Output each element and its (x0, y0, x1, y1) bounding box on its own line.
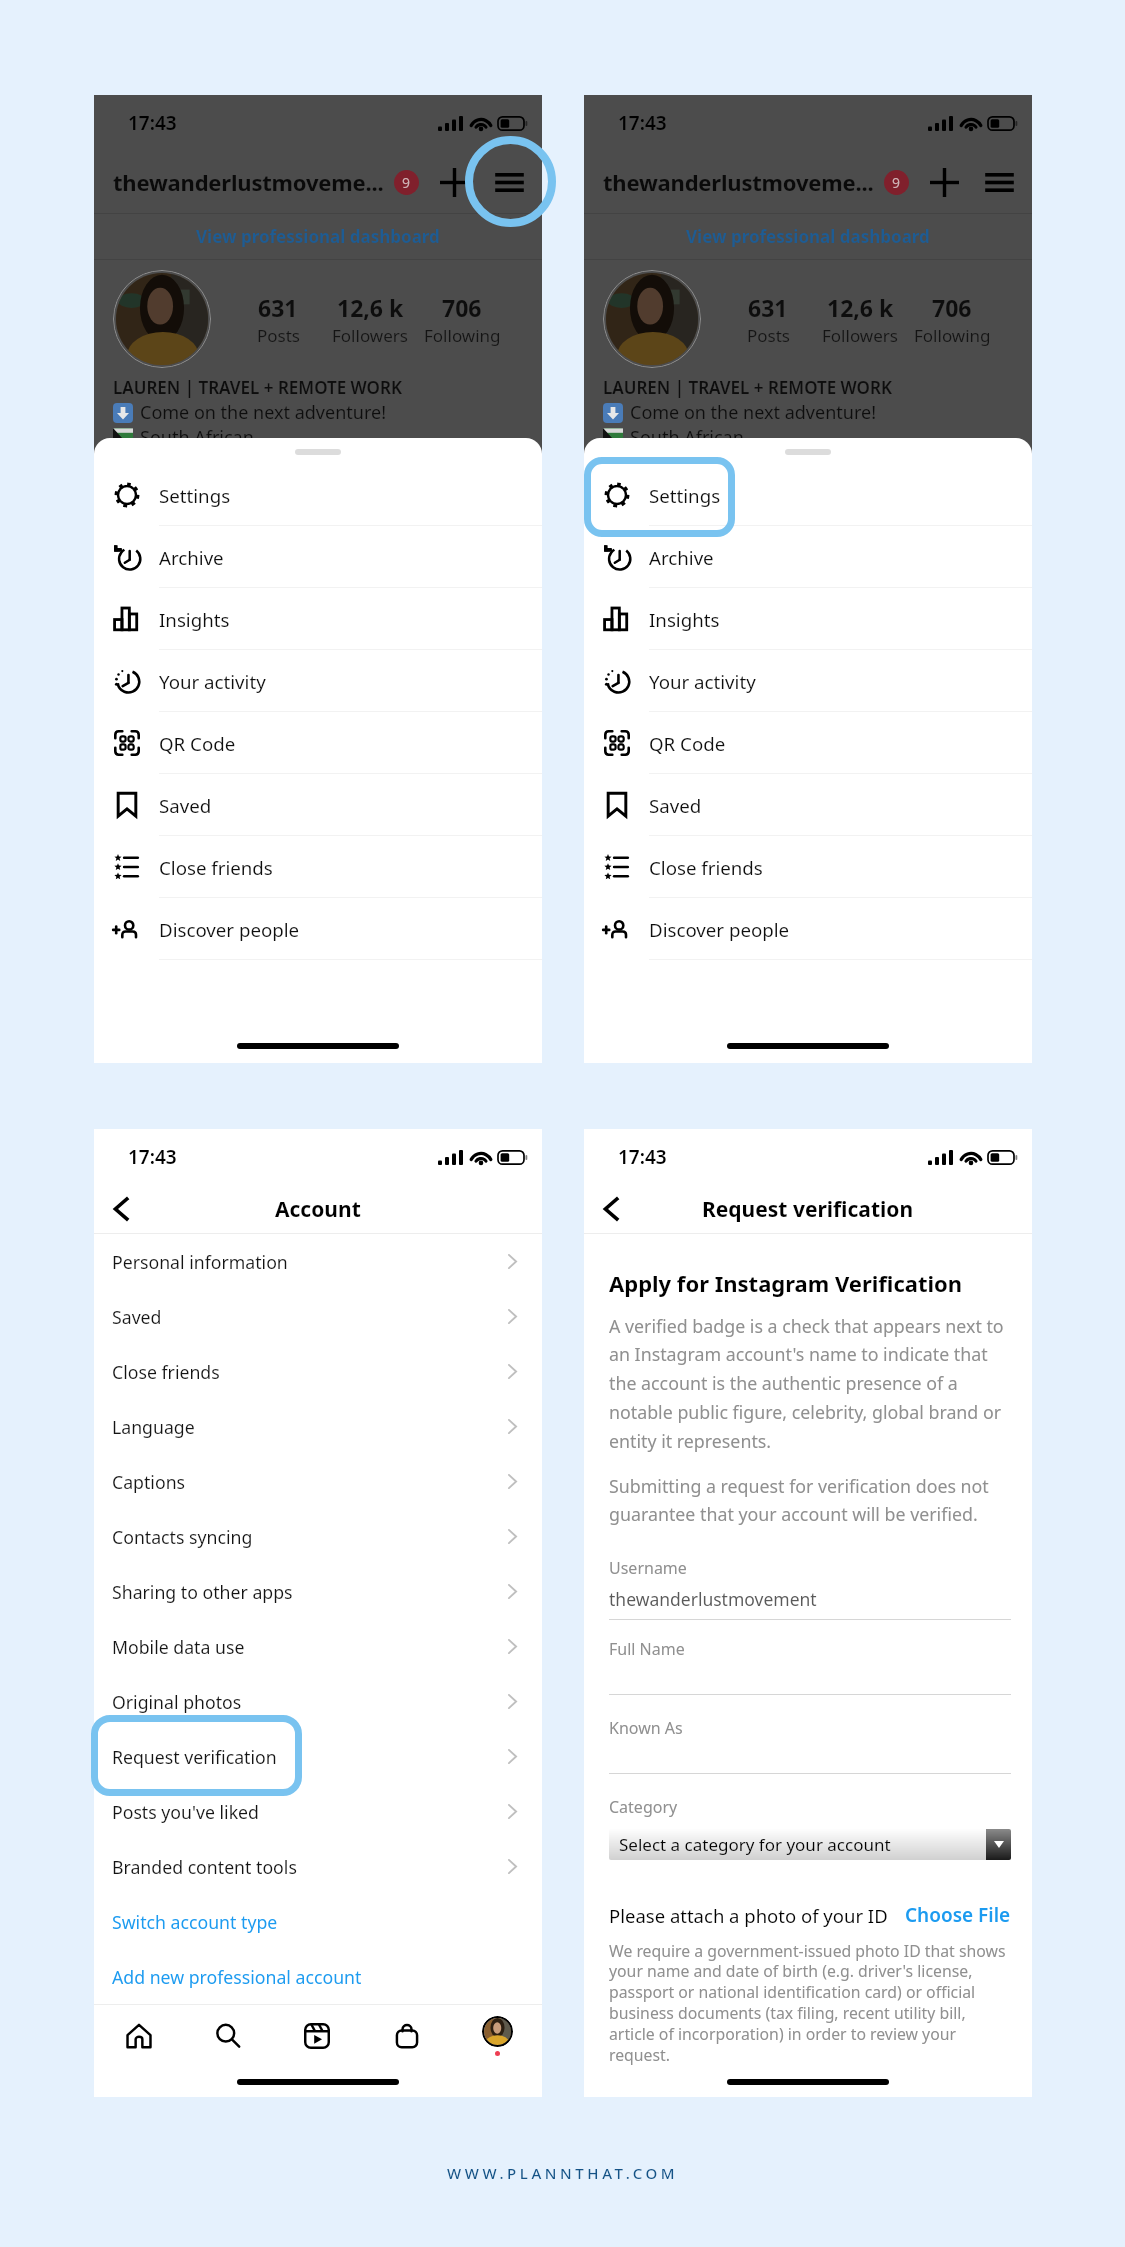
staticText: Settings (159, 483, 231, 508)
staticText: LAUREN | TRAVEL + REMOTE WORK (603, 376, 892, 399)
button[interactable]: View professional dashboard (94, 214, 542, 259)
button[interactable]: Language (112, 1399, 517, 1454)
button[interactable]: Shop (362, 2005, 452, 2067)
staticText: Posts (747, 324, 790, 347)
staticText: 9 (402, 173, 411, 192)
staticText: QR Code (649, 731, 726, 756)
button[interactable]: Your activity (584, 650, 1032, 712)
button[interactable]: Request verification (112, 1729, 517, 1784)
button[interactable]: Create (432, 158, 476, 206)
staticText: Select a category for your account (619, 1833, 891, 1856)
staticText: LAUREN | TRAVEL + REMOTE WORK (113, 376, 402, 399)
staticText: Known As (609, 1717, 683, 1739)
staticText: Original photos (112, 1690, 242, 1714)
staticText: South African (140, 425, 254, 450)
staticText: Following (424, 324, 501, 347)
staticText: Sharing to other apps (112, 1580, 293, 1604)
staticText: Your activity (649, 669, 756, 694)
button[interactable]: Saved (584, 774, 1032, 836)
staticText: 9 (892, 173, 901, 192)
staticText: Close friends (649, 855, 763, 880)
staticText: Request verification (702, 1195, 914, 1224)
button[interactable]: Search (183, 2005, 272, 2067)
button[interactable]: Your activity (94, 650, 542, 712)
button[interactable]: Select a category for your account (609, 1829, 1011, 1860)
staticText: 12,6 k (827, 292, 894, 323)
button[interactable]: Close friends (94, 836, 542, 898)
staticText: 706 (442, 292, 482, 323)
staticText: 631 (258, 292, 298, 323)
button[interactable]: Original photos (112, 1674, 517, 1729)
staticText: We require a government-issued photo ID … (609, 1940, 1011, 2066)
staticText: Posts (257, 324, 300, 347)
staticText: Submitting a request for verification do… (609, 1474, 1011, 1527)
button[interactable]: Branded content tools (112, 1839, 517, 1894)
button[interactable]: Profile photo (113, 270, 211, 368)
staticText: WWW.PLANNTHAT.COM (447, 2163, 679, 2183)
staticText: Request verification (112, 1745, 277, 1769)
button[interactable]: Close friends (584, 836, 1032, 898)
staticText: Saved (112, 1305, 162, 1329)
button[interactable]: Posts you've liked (112, 1784, 517, 1839)
button[interactable]: View professional dashboard (584, 214, 1032, 259)
staticText: 17:43 (618, 110, 667, 136)
staticText: Add new professional account (112, 1965, 362, 1989)
button[interactable]: Reels (272, 2005, 362, 2067)
staticText: Saved (159, 793, 212, 818)
button[interactable]: Saved (112, 1289, 517, 1344)
staticText: View professional dashboard (196, 225, 440, 248)
button[interactable]: Menu (487, 158, 531, 206)
button[interactable]: Captions (112, 1454, 517, 1509)
button[interactable]: Discover people (94, 898, 542, 960)
button[interactable]: Back (584, 1185, 640, 1233)
button[interactable]: Saved (94, 774, 542, 836)
staticText: Captions (112, 1470, 186, 1494)
button[interactable]: Settings (94, 464, 542, 526)
button[interactable]: Personal information (112, 1234, 517, 1289)
staticText: Come on the next adventure! (630, 400, 876, 425)
button[interactable]: Archive (584, 526, 1032, 588)
staticText: Mobile data use (112, 1635, 245, 1659)
staticText: Username (609, 1557, 687, 1579)
button[interactable]: Settings (584, 464, 1032, 526)
button[interactable]: Add new professional account (112, 1949, 542, 2004)
button[interactable]: Close friends (112, 1344, 517, 1399)
staticText: Apply for Instagram Verification (609, 1268, 963, 1298)
button[interactable]: Profile (452, 2005, 542, 2067)
staticText: Contacts syncing (112, 1525, 253, 1549)
button[interactable]: Insights (94, 588, 542, 650)
button[interactable]: Profile photo (603, 270, 701, 368)
staticText: thewanderlustmovement (609, 1587, 817, 1611)
button[interactable]: QR Code (94, 712, 542, 774)
staticText: Branded content tools (112, 1855, 297, 1879)
staticText: View professional dashboard (686, 225, 930, 248)
staticText: Followers (822, 324, 898, 347)
staticText: Choose File (905, 1902, 1011, 1928)
button[interactable]: Menu (977, 158, 1021, 206)
button[interactable]: Mobile data use (112, 1619, 517, 1674)
button[interactable]: Switch account type (112, 1894, 542, 1949)
staticText: 17:43 (618, 1144, 667, 1170)
button[interactable]: Home (94, 2005, 183, 2067)
staticText: Posts you've liked (112, 1800, 259, 1824)
staticText: Your activity (159, 669, 266, 694)
staticText: Come on the next adventure! (140, 400, 386, 425)
staticText: Full Name (609, 1638, 685, 1660)
button[interactable]: Contacts syncing (112, 1509, 517, 1564)
button[interactable]: Back (94, 1185, 150, 1233)
staticText: 631 (748, 292, 788, 323)
button[interactable]: Insights (584, 588, 1032, 650)
button[interactable]: Archive (94, 526, 542, 588)
button[interactable]: QR Code (584, 712, 1032, 774)
staticText: Switch account type (112, 1910, 278, 1934)
button[interactable]: Choose File (905, 1902, 1011, 1928)
button[interactable]: Sharing to other apps (112, 1564, 517, 1619)
staticText: Saved (649, 793, 702, 818)
button[interactable]: Discover people (584, 898, 1032, 960)
staticText: Discover people (159, 917, 300, 942)
staticText: Following (914, 324, 991, 347)
staticText: Insights (159, 607, 230, 632)
staticText: Followers (332, 324, 408, 347)
button[interactable]: Create (922, 158, 966, 206)
staticText: Category (609, 1796, 678, 1818)
